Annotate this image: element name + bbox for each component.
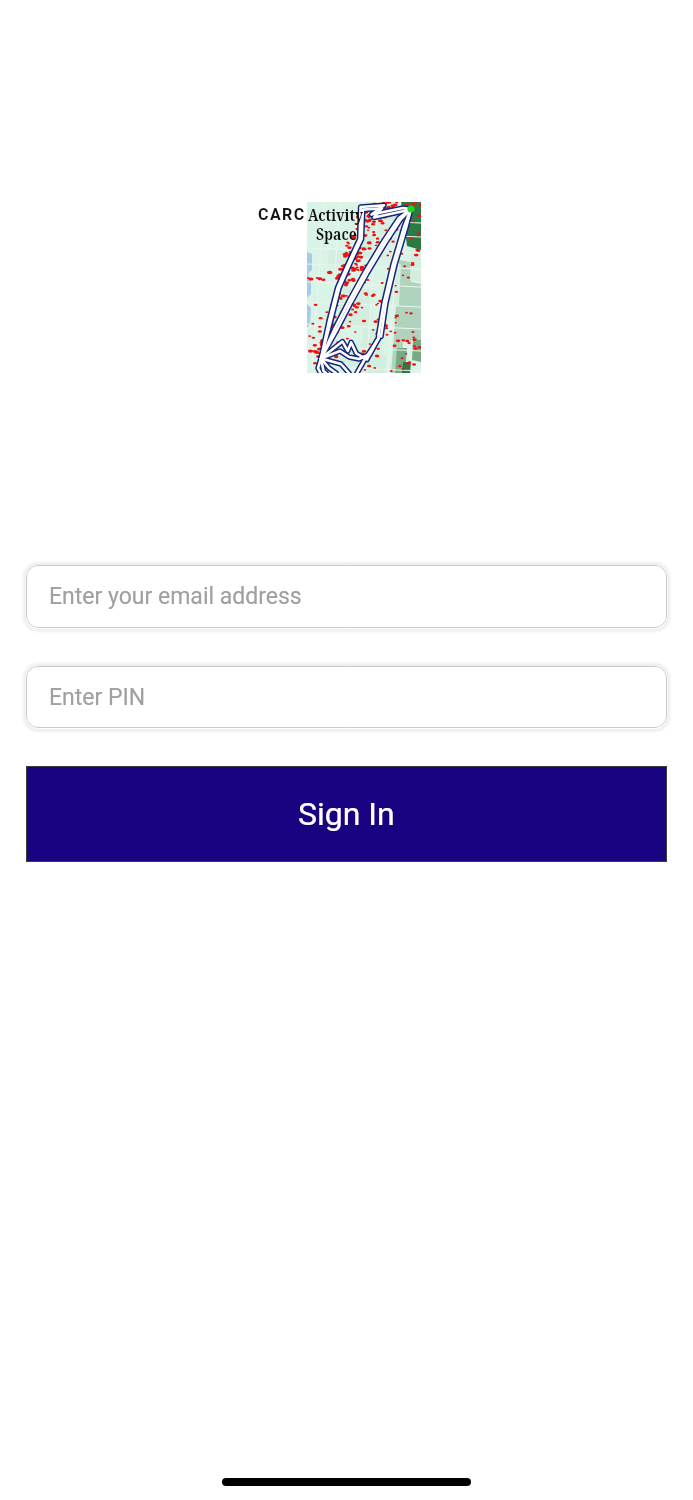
button[interactable]: Enter your email address: [26, 565, 667, 628]
staticText: Activity: [308, 203, 364, 226]
staticText: Sign In: [298, 795, 395, 833]
button[interactable]: Sign In: [26, 766, 667, 862]
staticText: Enter your email address: [49, 583, 302, 610]
button[interactable]: Enter PIN: [26, 666, 667, 728]
other: CARC Activity Space logo: [307, 202, 421, 373]
staticText: CARC: [258, 205, 306, 224]
staticText: Enter PIN: [49, 684, 146, 711]
staticText: Space: [316, 222, 357, 245]
